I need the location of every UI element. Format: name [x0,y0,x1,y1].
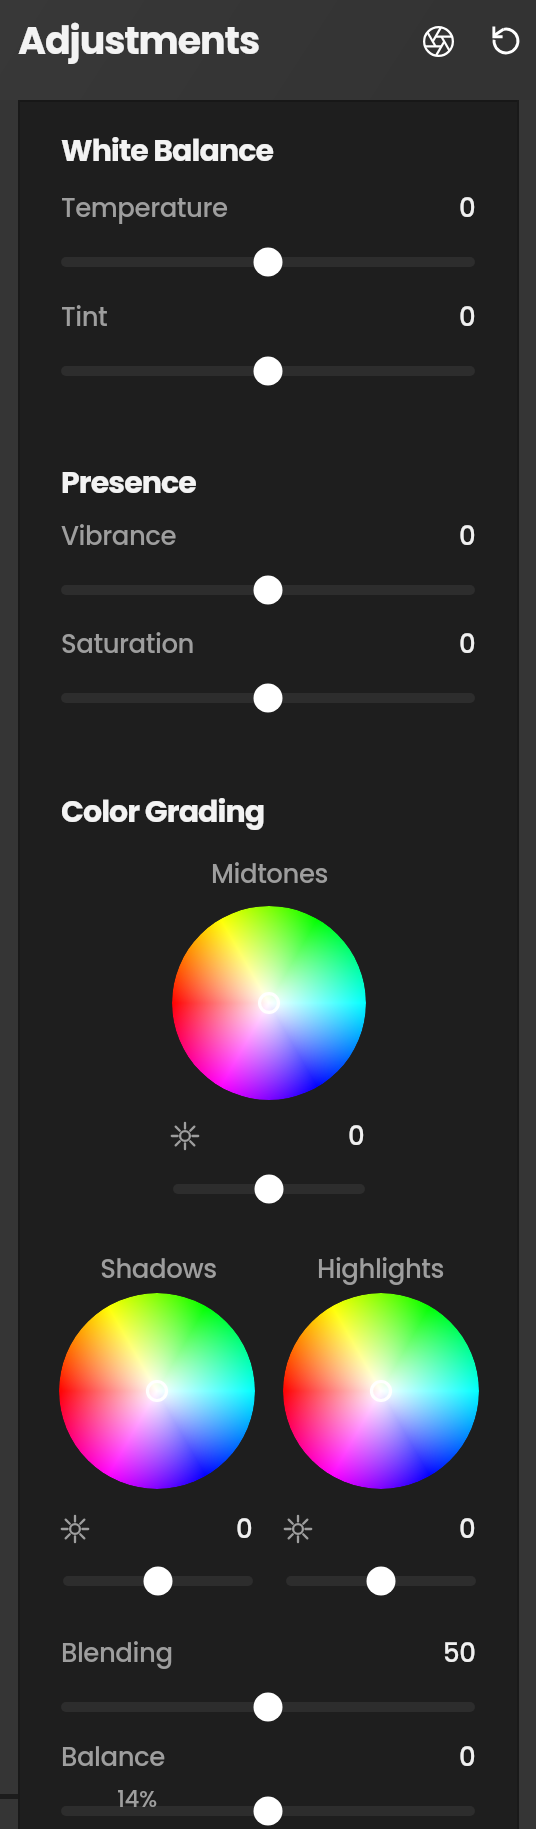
staticText: Color Grading [61,791,265,833]
staticText: Presence [61,462,196,504]
staticText: 0 [459,299,476,335]
button[interactable]: Tint [61,293,476,395]
button[interactable]: Balance [61,1733,476,1829]
button[interactable]: Brightness [284,1515,312,1543]
staticText: 0 [459,518,476,554]
button[interactable]: Brightness [61,1515,89,1543]
button[interactable] [173,1174,365,1204]
button[interactable]: Saturation [61,620,476,722]
staticText: 0 [236,1511,253,1547]
button[interactable]: Vibrance [61,512,476,614]
button[interactable] [61,575,475,605]
staticText: White Balance [61,130,274,172]
button[interactable] [286,1566,476,1596]
staticText: Adjustments [18,14,260,67]
staticText: Shadows [100,1251,217,1287]
button[interactable]: Brightness [171,1122,199,1150]
button[interactable]: Temperature [61,184,476,286]
button[interactable] [61,356,475,386]
button[interactable]: Color wheel [283,1293,479,1489]
staticText: Tint [61,299,108,335]
button[interactable] [61,1796,475,1826]
button[interactable] [61,247,475,277]
button[interactable]: Color wheel [59,1293,255,1489]
button[interactable] [63,1566,253,1596]
staticText: Temperature [61,190,228,226]
staticText: Saturation [61,626,194,662]
button[interactable]: Blending [61,1629,476,1731]
button[interactable]: Aperture [414,17,462,65]
staticText: 0 [459,190,476,226]
staticText: Blending [61,1635,173,1671]
staticText: Balance [61,1739,165,1775]
staticText: 0 [459,1511,476,1547]
staticText: 14% [117,1783,157,1815]
button[interactable] [61,1692,475,1722]
staticText: Midtones [211,856,328,892]
staticText: 0 [459,626,476,662]
staticText: 0 [459,1739,476,1775]
button[interactable] [61,683,475,713]
staticText: 0 [348,1118,365,1154]
staticText: Vibrance [61,518,177,554]
staticText: Highlights [317,1251,444,1287]
button[interactable]: Color wheel [172,906,366,1100]
staticText: 50 [443,1635,476,1671]
button[interactable]: Reset [482,17,530,65]
